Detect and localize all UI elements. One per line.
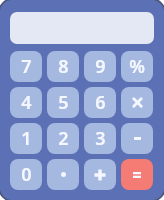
button[interactable]: Multiply xyxy=(121,87,153,118)
button[interactable]: Percent xyxy=(121,51,153,82)
button[interactable]: Decimal point xyxy=(47,159,79,190)
button[interactable]: 0 xyxy=(10,159,42,190)
staticText: 4 xyxy=(21,90,32,115)
button[interactable]: Display xyxy=(10,12,154,44)
staticText: 3 xyxy=(95,126,106,151)
button[interactable]: 2 xyxy=(47,123,79,154)
button[interactable]: 7 xyxy=(10,51,42,82)
staticText: 5 xyxy=(58,90,69,115)
staticText: % xyxy=(129,54,145,79)
staticText: 8 xyxy=(58,54,69,79)
button[interactable]: 1 xyxy=(10,123,42,154)
button[interactable]: 4 xyxy=(10,87,42,118)
button[interactable]: Plus xyxy=(84,159,116,190)
button[interactable]: 8 xyxy=(47,51,79,82)
staticText: 9 xyxy=(95,54,106,79)
staticText: 1 xyxy=(21,126,32,151)
staticText: 0 xyxy=(21,162,32,187)
staticText: 7 xyxy=(21,54,32,79)
button[interactable]: 6 xyxy=(84,87,116,118)
button[interactable]: 3 xyxy=(84,123,116,154)
staticText: 6 xyxy=(95,90,106,115)
button[interactable]: Minus xyxy=(121,123,153,154)
button[interactable]: 5 xyxy=(47,87,79,118)
staticText: 2 xyxy=(58,126,69,151)
button[interactable]: 9 xyxy=(84,51,116,82)
button[interactable]: Equals xyxy=(121,159,153,190)
